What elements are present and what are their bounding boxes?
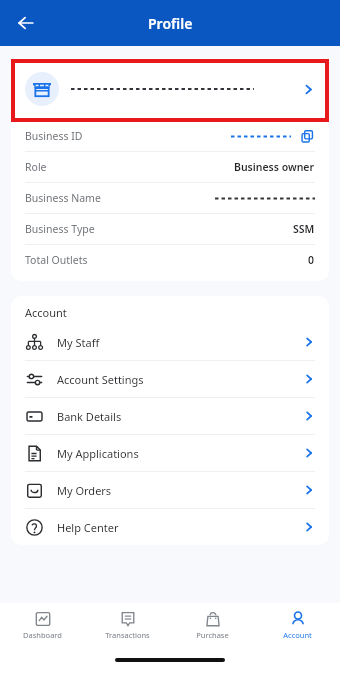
staticText: Bank Details <box>57 409 122 424</box>
button[interactable]: Account <box>255 603 340 647</box>
button[interactable]: Transactions <box>85 603 170 647</box>
staticText: 0 <box>308 253 315 267</box>
button[interactable]: Back <box>8 5 44 41</box>
button[interactable]: Bank Details <box>11 397 329 434</box>
staticText: My Staff <box>57 335 100 350</box>
button[interactable]: Account Settings <box>11 360 329 397</box>
button[interactable]: Help Center <box>11 508 329 545</box>
staticText: Transactions <box>105 630 150 640</box>
staticText: My Applications <box>57 446 139 461</box>
button[interactable]: My Applications <box>11 434 329 471</box>
button[interactable]: My Staff <box>11 324 329 360</box>
staticText: Account <box>283 630 312 640</box>
button[interactable]: Copy Business ID <box>299 128 315 144</box>
staticText: Account Settings <box>57 372 144 387</box>
staticText: Help Center <box>57 520 119 535</box>
button[interactable]: My Orders <box>11 471 329 508</box>
staticText: Role <box>25 160 47 174</box>
staticText: Purchase <box>196 630 229 640</box>
button[interactable]: Dashboard <box>0 603 85 647</box>
staticText: Business ID <box>25 129 83 143</box>
button[interactable] <box>11 58 329 120</box>
staticText: My Orders <box>57 483 112 498</box>
staticText: Profile <box>148 14 193 33</box>
staticText: Total Outlets <box>25 253 88 267</box>
button[interactable]: Purchase <box>170 603 255 647</box>
staticText: Business Name <box>25 191 101 205</box>
staticText: Business Type <box>25 222 95 236</box>
staticText: Dashboard <box>23 630 62 640</box>
staticText: Business owner <box>234 160 315 174</box>
staticText: SSM <box>293 222 315 236</box>
staticText: Account <box>25 305 67 320</box>
